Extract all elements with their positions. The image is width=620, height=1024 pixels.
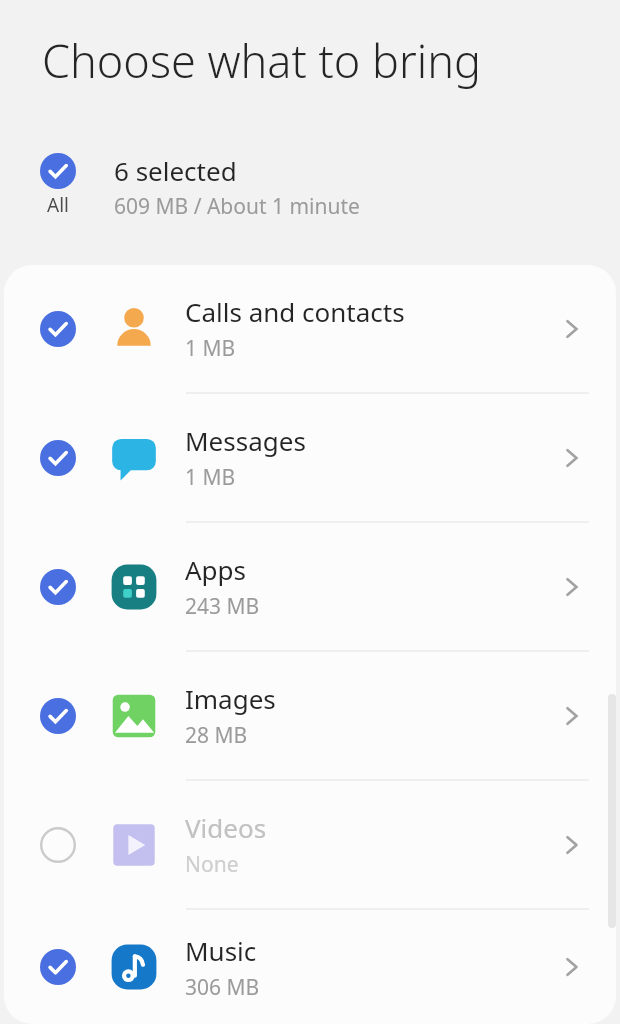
staticText: Calls and contacts <box>185 294 405 329</box>
staticText: Images <box>185 681 276 716</box>
button[interactable]: Messages <box>4 394 616 521</box>
button[interactable]: Images <box>4 652 616 779</box>
staticText: Choose what to bring <box>42 30 481 91</box>
button[interactable]: Music <box>4 910 616 1024</box>
staticText: None <box>185 850 239 879</box>
staticText: 609 MB / About 1 minute <box>114 192 360 221</box>
staticText: 28 MB <box>185 721 248 750</box>
staticText: 306 MB <box>185 973 260 1002</box>
staticText: 6 selected <box>114 153 237 188</box>
button[interactable]: All <box>0 153 620 221</box>
staticText: Messages <box>185 423 306 458</box>
button[interactable]: Calls and contacts <box>4 265 616 392</box>
staticText: All <box>47 192 69 218</box>
staticText: Apps <box>185 552 247 587</box>
staticText: Music <box>185 933 257 968</box>
button[interactable]: Videos <box>4 781 616 908</box>
staticText: 243 MB <box>185 592 260 621</box>
staticText: 1 MB <box>185 334 236 363</box>
staticText: Videos <box>185 810 267 845</box>
button[interactable]: Apps <box>4 523 616 650</box>
staticText: 1 MB <box>185 463 236 492</box>
